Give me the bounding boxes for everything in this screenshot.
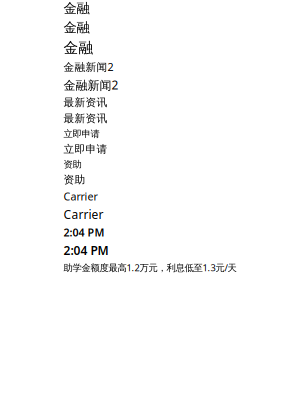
staticText: 2:04 PM: [63, 225, 104, 239]
staticText: 资助: [63, 173, 85, 186]
staticText: 金融: [63, 39, 93, 57]
staticText: 金融新闻2: [63, 77, 118, 93]
staticText: 最新资讯: [63, 96, 107, 109]
staticText: 资助: [63, 159, 81, 170]
staticText: 2:04 PM: [63, 242, 108, 258]
staticText: Carrier: [63, 206, 103, 222]
staticText: 金融: [63, 0, 89, 16]
staticText: 立即申请: [63, 142, 107, 156]
staticText: 金融: [63, 19, 89, 36]
staticText: 最新资讯: [63, 112, 107, 125]
staticText: 助学金额度最高1.2万元，利息低至1.3元/天: [63, 261, 236, 274]
staticText: 立即申请: [63, 128, 99, 140]
staticText: 金融新闻2: [63, 60, 113, 74]
staticText: Carrier: [63, 189, 97, 203]
